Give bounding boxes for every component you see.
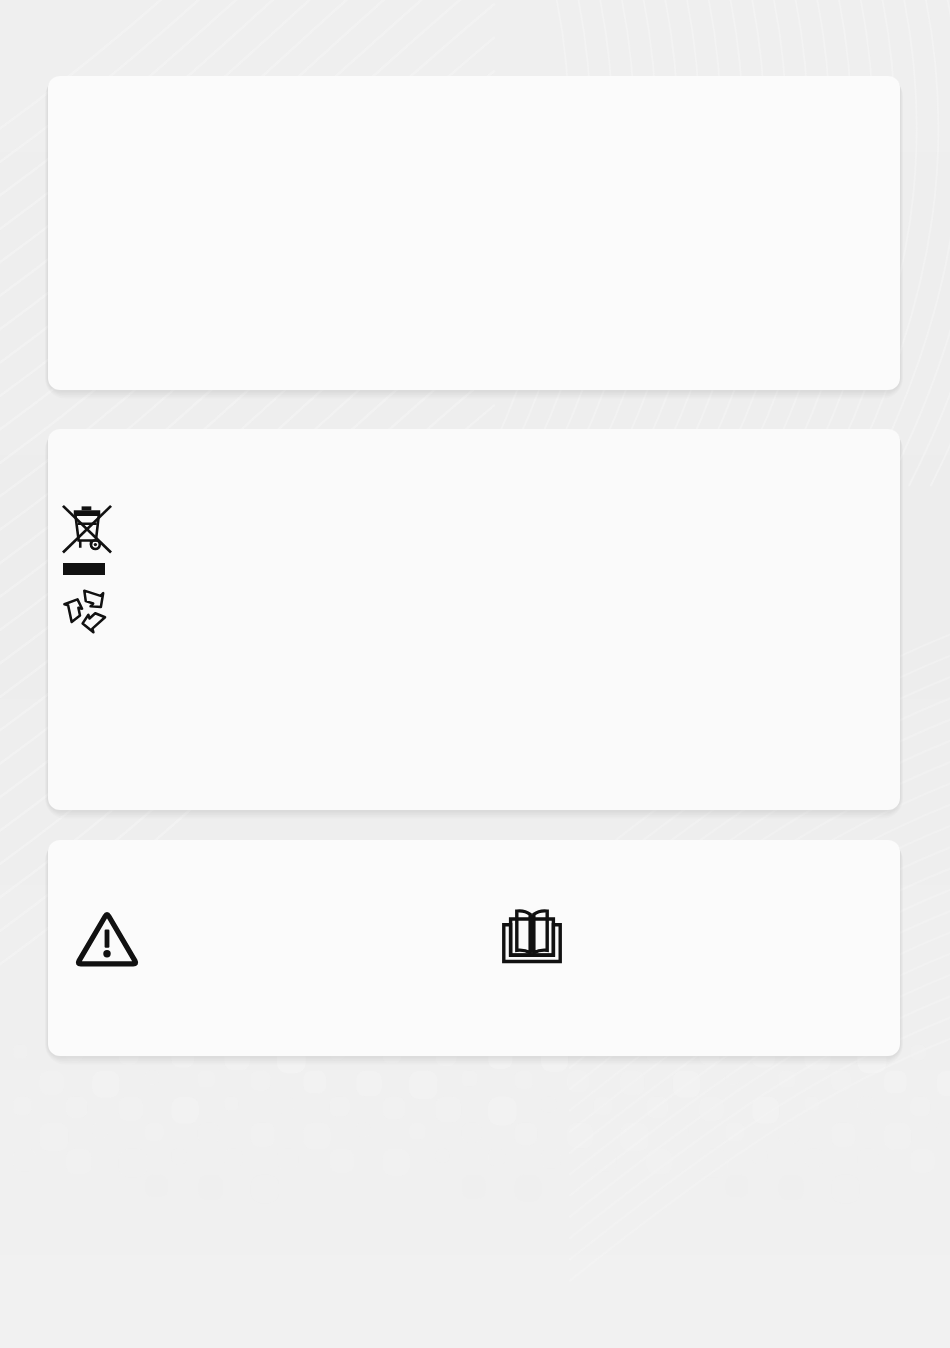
other: Recyclable xyxy=(58,586,116,632)
button[interactable]: Warning xyxy=(48,840,900,1056)
other: Warning xyxy=(75,910,139,968)
other: Do not dispose in household waste xyxy=(60,503,114,555)
button[interactable]: Do not dispose in household waste xyxy=(48,429,900,810)
other: Read the instruction manual xyxy=(501,908,563,964)
